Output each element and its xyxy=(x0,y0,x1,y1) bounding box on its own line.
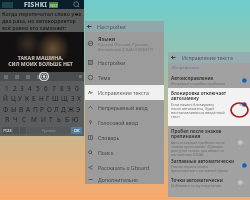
button[interactable]: Х xyxy=(77,94,81,103)
button[interactable]: 9 xyxy=(67,84,71,93)
staticText: Е xyxy=(32,94,36,103)
button[interactable]: Исправление текста xyxy=(85,85,164,100)
button[interactable]: Д xyxy=(61,105,66,114)
staticText: NET xyxy=(50,3,58,8)
staticText: Ы xyxy=(11,105,17,114)
button[interactable]: Голосовой ввод xyxy=(85,115,164,130)
button[interactable]: Н xyxy=(39,94,44,103)
button[interactable]: Рассказать о Gboard xyxy=(85,160,164,175)
button[interactable]: Ы xyxy=(11,105,17,114)
staticText: FISHKI xyxy=(24,0,48,9)
button[interactable]: З xyxy=(71,94,75,103)
staticText: Ч xyxy=(13,115,18,124)
staticText: А xyxy=(26,105,31,114)
staticText: П xyxy=(33,105,38,114)
button[interactable]: Тема xyxy=(85,70,164,85)
button[interactable]: Точки автоматически xyxy=(168,175,250,193)
staticText: У xyxy=(18,94,23,103)
button[interactable]: Поиск xyxy=(85,145,164,160)
button[interactable]: Toggle Заглавные автоматически xyxy=(238,162,249,169)
button[interactable]: OK xyxy=(71,127,82,134)
staticText: Й xyxy=(3,94,8,103)
button[interactable]: Toolbar action xyxy=(37,75,41,79)
button[interactable]: 4 xyxy=(28,84,32,93)
staticText: Когда перепечатал слово уже два раза, но… xyxy=(2,10,82,31)
button[interactable]: Пробел после знаков препинания xyxy=(168,126,250,156)
button[interactable]: Toggle Точки автоматически xyxy=(238,179,249,186)
button[interactable]: Toggle Пробел после знаков препинания xyxy=(238,139,249,146)
button[interactable]: Непрерывный ввод xyxy=(85,100,164,115)
button[interactable]: П xyxy=(33,105,38,114)
button[interactable]: 6 xyxy=(44,84,48,93)
button[interactable]: Е xyxy=(32,94,36,103)
button[interactable]: Menu xyxy=(0,0,84,9)
button[interactable]: Б xyxy=(65,115,69,124)
button[interactable]: Ч xyxy=(13,115,18,124)
button[interactable]: С xyxy=(22,115,27,124)
button[interactable]: И xyxy=(41,115,46,124)
button[interactable]: Блокировка отключает автозамену xyxy=(168,88,250,126)
button[interactable]: Л xyxy=(54,105,59,114)
staticText: Ь xyxy=(57,115,61,124)
button[interactable]: 8 xyxy=(60,84,64,93)
staticText: Дополнительно xyxy=(98,176,138,183)
button[interactable]: О xyxy=(47,105,52,114)
staticText: Д xyxy=(61,105,66,114)
staticText: Л xyxy=(54,105,59,114)
button[interactable]: Автоисправление xyxy=(168,73,250,88)
staticText: Точки автоматически xyxy=(171,177,223,183)
button[interactable]: Дополнительно xyxy=(85,175,164,184)
button[interactable]: Toggle Блокировка отключает автозамену xyxy=(238,101,249,108)
button[interactable]: 1 xyxy=(5,84,9,93)
staticText: Н xyxy=(39,94,44,103)
button[interactable]: 5 xyxy=(36,84,40,93)
button[interactable]: Toggle Автоисправление xyxy=(238,77,249,84)
button[interactable]: Заглавные автоматически xyxy=(168,156,250,175)
button[interactable]: А xyxy=(26,105,31,114)
button[interactable]: Р xyxy=(40,105,44,114)
button[interactable]: Настройки xyxy=(85,55,164,70)
button[interactable]: Search xyxy=(73,1,80,8)
button[interactable]: Русский xyxy=(27,127,70,134)
button[interactable]: Ф xyxy=(3,105,9,114)
button[interactable]: К xyxy=(25,94,30,103)
button[interactable]: Ц xyxy=(11,94,16,103)
button[interactable]: Э xyxy=(76,105,81,114)
button[interactable]: Back xyxy=(85,21,164,32)
button[interactable]: 0 xyxy=(75,84,79,93)
button[interactable]: 3 xyxy=(20,84,24,93)
button[interactable]: Й xyxy=(3,94,8,103)
button[interactable]: Щ xyxy=(61,94,68,103)
button[interactable]: В xyxy=(19,105,24,114)
button[interactable]: Ь xyxy=(57,115,61,124)
button[interactable]: ?123 xyxy=(2,127,12,134)
staticText: ?123 xyxy=(3,128,12,133)
button[interactable]: Я xyxy=(5,115,10,124)
staticText: 6 xyxy=(44,84,48,93)
button[interactable]: Языки xyxy=(85,32,164,55)
staticText: З xyxy=(71,94,75,103)
button[interactable]: Г xyxy=(46,94,50,103)
staticText: И xyxy=(41,115,46,124)
button[interactable]: 2 xyxy=(13,84,17,93)
button[interactable]: Ш xyxy=(52,94,59,103)
button[interactable]: Ж xyxy=(68,105,74,114)
button[interactable]: У xyxy=(18,94,23,103)
button[interactable]: Ю xyxy=(72,115,79,124)
button[interactable]: Back xyxy=(168,52,250,63)
staticText: 5 xyxy=(36,84,40,93)
staticText: В xyxy=(19,105,24,114)
button[interactable]: Словарь xyxy=(85,130,164,145)
button[interactable]: М xyxy=(31,115,37,124)
button[interactable]: 7 xyxy=(52,84,56,93)
button[interactable]: Т xyxy=(49,115,53,124)
button[interactable]: Keyboard settings xyxy=(39,72,49,81)
staticText: Исправление текста xyxy=(98,89,149,96)
